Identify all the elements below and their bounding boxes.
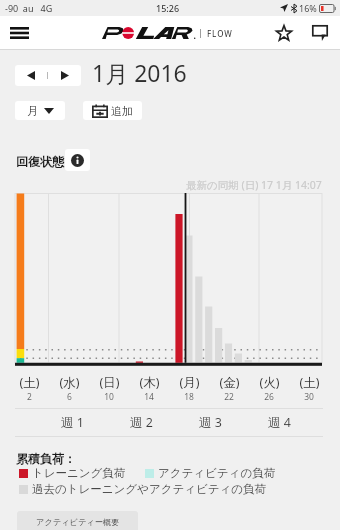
staticText: (火) (259, 374, 280, 391)
staticText: 22 (224, 391, 234, 403)
staticText: -90 au 4G (5, 2, 53, 14)
staticText: (月) (179, 374, 200, 391)
staticText: トレーニング負荷 (32, 466, 126, 480)
button[interactable]: Previous month (15, 65, 47, 86)
staticText: 1月 2016 (92, 57, 187, 88)
staticText: 回復状態 (16, 154, 64, 169)
staticText: 累積負荷： (16, 451, 76, 466)
staticText: (木) (139, 374, 160, 391)
staticText: 週 4 (268, 414, 291, 431)
button[interactable]: 追加 (83, 101, 142, 120)
button[interactable]: アクティビティー概要 (17, 511, 138, 530)
staticText: 2 (27, 391, 32, 403)
staticText: (水) (59, 374, 80, 391)
button[interactable]: Menu (4, 18, 34, 48)
staticText: (金) (219, 374, 240, 391)
button[interactable]: Messages (306, 19, 334, 47)
button[interactable]: 月 (15, 101, 65, 120)
staticText: 6 (67, 391, 72, 403)
staticText: (日) (99, 374, 120, 391)
staticText: 月 (27, 104, 38, 118)
staticText: 追加 (111, 104, 133, 118)
staticText: 週 2 (130, 414, 153, 431)
staticText: 18 (184, 391, 194, 403)
staticText: FLOW (207, 28, 233, 39)
button[interactable]: Info (65, 149, 90, 171)
staticText: 15:26 (156, 2, 180, 14)
staticText: 最新の同期 (日) 17 1月 14:07 (186, 178, 322, 192)
staticText: 26 (264, 391, 274, 403)
staticText: 週 3 (199, 414, 222, 431)
staticText: 過去のトレーニングやアクティビティの負荷 (32, 482, 267, 496)
button[interactable]: Next month (48, 65, 81, 86)
staticText: アクティビティの負荷 (158, 466, 276, 480)
staticText: 週 1 (61, 414, 84, 431)
staticText: 10 (104, 391, 114, 403)
staticText: (土) (19, 374, 40, 391)
staticText: 14 (144, 391, 154, 403)
staticText: (土) (299, 374, 320, 391)
button[interactable]: Favorites (270, 19, 298, 47)
staticText: アクティビティー概要 (36, 517, 120, 527)
staticText: 16% (299, 2, 317, 14)
staticText: 30 (304, 391, 314, 403)
